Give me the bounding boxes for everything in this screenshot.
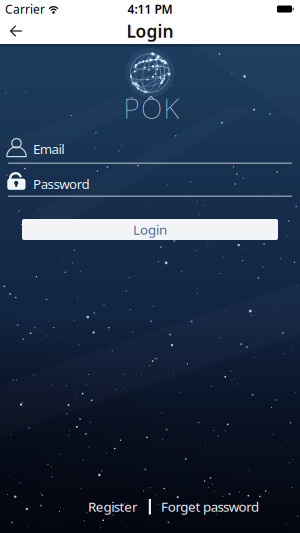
button[interactable]: Email: [0, 136, 300, 166]
button[interactable]: Password: [0, 168, 300, 198]
button[interactable]: Forget password: [157, 495, 263, 518]
staticText: POK: [123, 89, 179, 127]
staticText: 4:11 PM: [127, 1, 172, 17]
button[interactable]: Register: [84, 495, 142, 518]
button[interactable]: Back: [0, 18, 22, 44]
staticText: Password: [33, 175, 90, 193]
staticText: Carrier: [5, 1, 45, 17]
staticText: Login: [133, 221, 167, 238]
staticText: Register: [88, 498, 138, 515]
staticText: Login: [126, 19, 173, 42]
staticText: Email: [33, 140, 64, 158]
staticText: Forget password: [161, 498, 259, 515]
button[interactable]: Login: [22, 219, 278, 240]
